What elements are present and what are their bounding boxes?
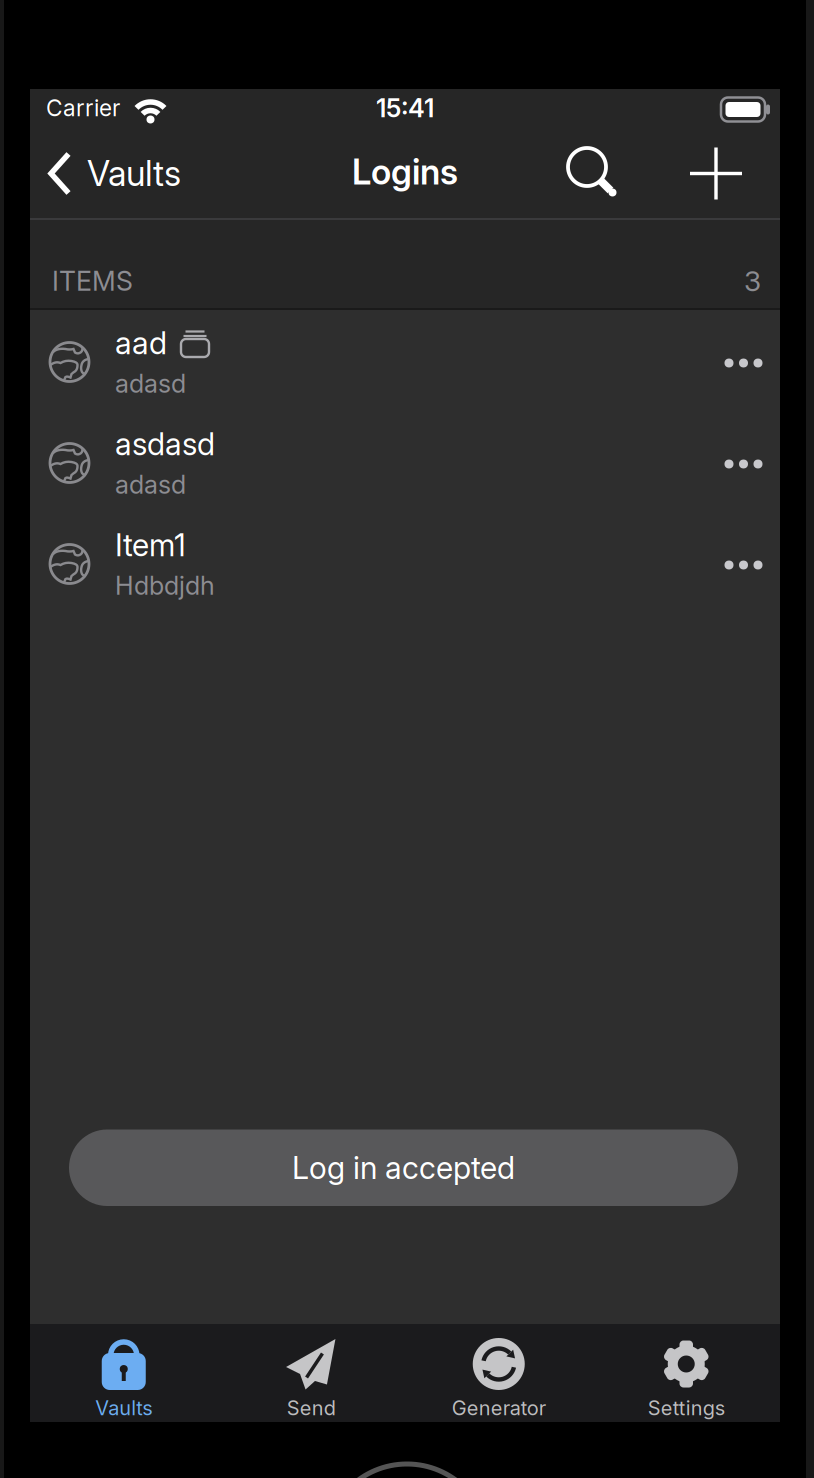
staticText: aad [115,325,167,361]
staticText: Hdbdjdh [115,571,215,600]
staticText: Generator [452,1396,546,1420]
button[interactable]: Search [559,139,619,199]
button[interactable]: More options [707,328,780,398]
staticText: Vaults [87,153,181,194]
staticText: Logins [352,152,458,192]
staticText: ITEMS [52,265,133,297]
button[interactable]: More options [707,429,780,499]
staticText: Settings [648,1396,725,1420]
button[interactable]: Vaults [30,1324,217,1422]
button[interactable]: Send [217,1324,405,1422]
staticText: Carrier [46,95,120,121]
button[interactable]: Settings [592,1324,780,1422]
staticText: adasd [115,369,186,398]
staticText: adasd [115,470,186,499]
staticText: 3 [744,264,761,297]
staticText: Vaults [95,1396,152,1420]
staticText: asdasd [115,426,215,462]
button[interactable]: Generator [405,1324,592,1422]
staticText: 15:41 [376,93,434,123]
button[interactable]: Add [684,141,748,205]
staticText: Log in accepted [292,1150,515,1186]
staticText: Send [287,1396,336,1420]
button[interactable]: aad [30,311,780,412]
button[interactable]: Log in accepted [69,1129,738,1206]
staticText: Item1 [115,527,186,563]
button[interactable]: Vaults [30,141,190,205]
button[interactable]: asdasd [30,412,780,513]
button[interactable]: More options [707,530,780,600]
button[interactable]: Item1 [30,513,780,614]
